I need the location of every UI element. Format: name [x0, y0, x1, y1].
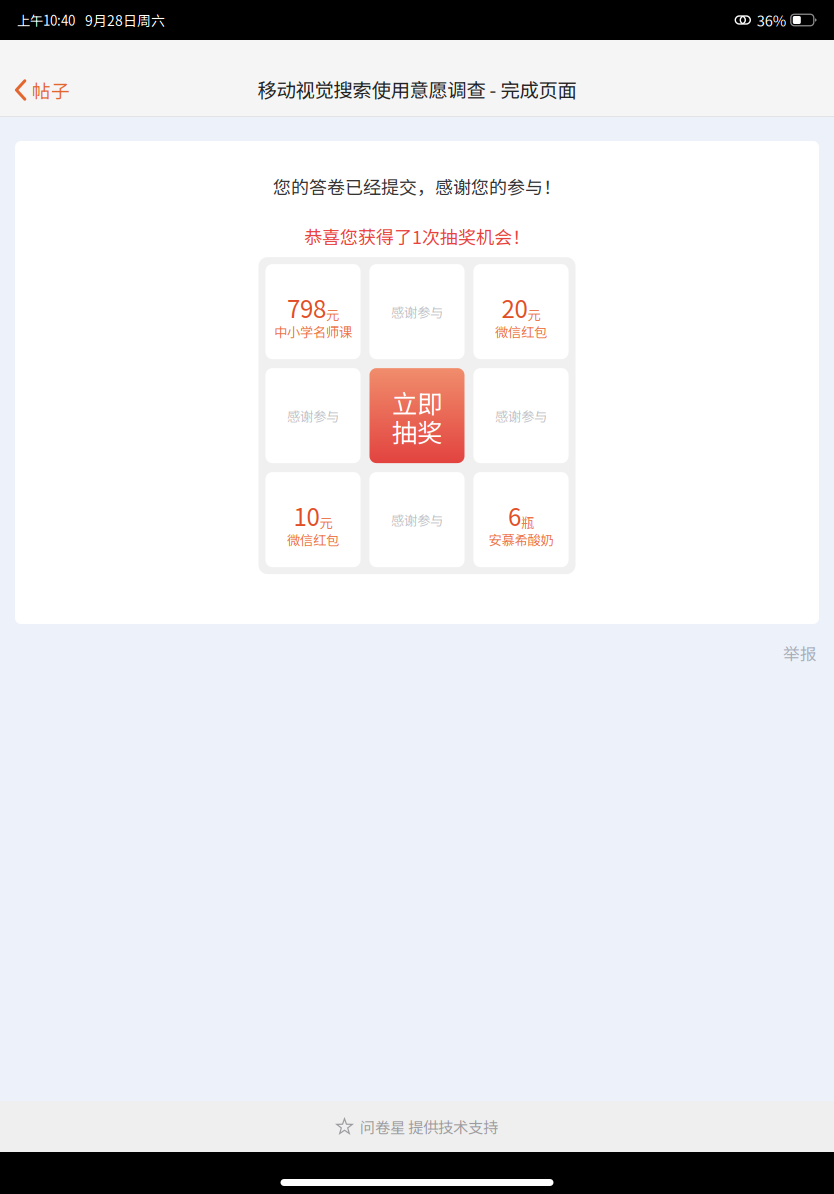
button[interactable]: 问卷星 提供技术支持 [0, 1101, 834, 1152]
button[interactable]: 举报 [766, 632, 834, 674]
staticText: 微信红包 [495, 322, 547, 341]
staticText: 上午10:40 [17, 10, 75, 30]
button[interactable]: 帖子 [0, 71, 84, 109]
staticText: 您的答卷已经提交，感谢您的参与！ [273, 173, 561, 199]
staticText: 感谢参与 [495, 406, 547, 425]
staticText: 问卷星 提供技术支持 [360, 1115, 498, 1138]
staticText: 感谢参与 [391, 510, 443, 529]
staticText: 20 [501, 290, 527, 325]
staticText: 10 [293, 498, 319, 533]
staticText: 移动视觉搜索使用意愿调查 - 完成页面 [257, 75, 576, 103]
staticText: 元 [527, 305, 540, 324]
staticText: 抽奖 [392, 413, 442, 449]
staticText: 798 [287, 290, 326, 325]
staticText: 安慕希酸奶 [488, 530, 553, 549]
staticText: 6 [508, 498, 521, 533]
staticText: 瓶 [521, 513, 534, 532]
staticText: 微信红包 [287, 530, 339, 549]
staticText: 帖子 [32, 76, 70, 103]
staticText: 立即 [392, 384, 442, 421]
staticText: 中小学名师课 [274, 322, 352, 341]
staticText: 恭喜您获得了1次抽奖机会！ [304, 223, 530, 249]
staticText: 元 [319, 513, 332, 532]
staticText: 举报 [783, 641, 817, 665]
staticText: 9月28日周六 [85, 10, 165, 30]
staticText: 感谢参与 [391, 302, 443, 321]
staticText: 元 [326, 305, 339, 324]
button[interactable]: 立即 [369, 368, 464, 463]
staticText: 感谢参与 [287, 406, 339, 425]
staticText: 36% [757, 9, 787, 31]
